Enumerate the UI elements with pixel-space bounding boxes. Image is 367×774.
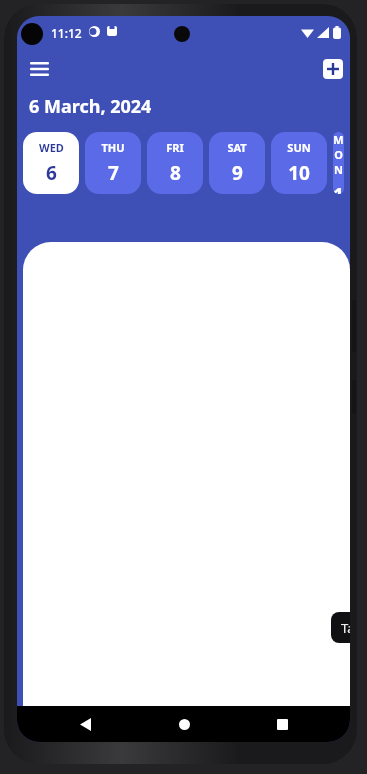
staticText: THU xyxy=(101,140,125,155)
staticText: 10 xyxy=(288,160,310,186)
staticText: 9 xyxy=(232,160,243,186)
button[interactable]: Home xyxy=(154,706,214,742)
staticText: FRI xyxy=(166,140,184,155)
button[interactable]: Add event xyxy=(323,59,343,79)
staticText: 8 xyxy=(170,160,181,186)
button[interactable]: MON xyxy=(333,132,344,194)
staticText: 6 xyxy=(46,160,57,186)
staticText: 11:12 xyxy=(51,25,82,41)
button[interactable]: SUN xyxy=(271,132,327,194)
staticText: MON xyxy=(333,132,344,177)
staticText: 6 March, 2024 xyxy=(29,94,152,119)
button[interactable]: FRI xyxy=(147,132,203,194)
staticText: 11 xyxy=(333,182,344,194)
button[interactable]: Open navigation menu xyxy=(19,50,59,88)
staticText: 7 xyxy=(108,160,119,186)
button[interactable]: Back xyxy=(55,706,115,742)
staticText: Take a note xyxy=(341,619,350,637)
button[interactable]: Take a note xyxy=(331,612,350,643)
staticText: WED xyxy=(39,140,64,155)
button[interactable]: SAT xyxy=(209,132,265,194)
staticText: SAT xyxy=(227,140,247,155)
button[interactable]: WED xyxy=(23,132,79,194)
button[interactable]: THU xyxy=(85,132,141,194)
button[interactable]: Recent apps xyxy=(252,706,312,742)
staticText: SUN xyxy=(287,140,311,155)
